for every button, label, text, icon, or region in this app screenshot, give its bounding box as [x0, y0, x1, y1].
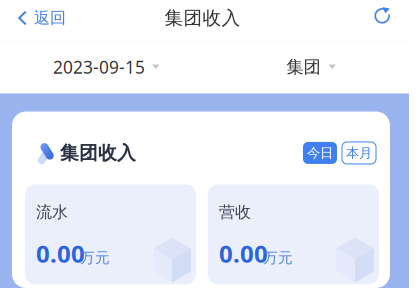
- staticText: 流水: [36, 202, 68, 222]
- staticText: 0.00: [36, 238, 85, 269]
- button[interactable]: 刷新: [364, 0, 409, 40]
- staticText: 集团: [286, 56, 320, 78]
- staticText: 本月: [346, 145, 372, 161]
- button[interactable]: 返回: [0, 0, 76, 40]
- staticText: 今日: [307, 145, 333, 161]
- button[interactable]: 本月: [342, 142, 376, 164]
- button[interactable]: 今日: [303, 142, 337, 164]
- staticText: 集团收入: [60, 141, 136, 164]
- staticText: 营收: [219, 202, 251, 222]
- staticText: 0.00: [219, 238, 268, 269]
- button[interactable]: 集团: [276, 40, 409, 93]
- staticText: 万元: [263, 249, 293, 267]
- staticText: 2023-09-15: [53, 55, 145, 78]
- button[interactable]: 2023-09-15: [0, 40, 169, 93]
- staticText: 集团收入: [164, 6, 240, 29]
- staticText: 万元: [80, 249, 110, 267]
- staticText: 返回: [34, 8, 66, 28]
